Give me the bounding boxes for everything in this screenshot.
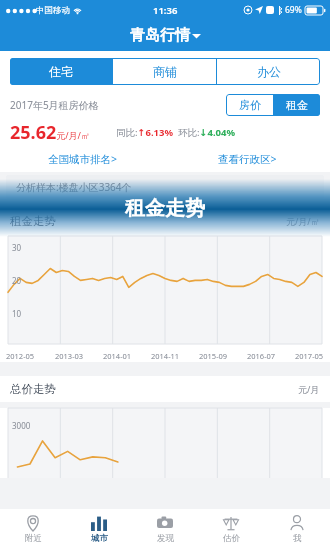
button[interactable]: 办公 — [217, 58, 320, 85]
button[interactable]: 商铺 — [113, 58, 216, 85]
staticText: 2012-05 — [6, 351, 35, 361]
staticText: 我 — [293, 533, 302, 544]
other: 发现 — [157, 515, 173, 531]
button[interactable]: 估价 — [198, 509, 264, 550]
staticText: 3000 — [12, 420, 31, 431]
button[interactable]: 我 — [264, 509, 330, 550]
staticText: 查看行政区> — [218, 152, 277, 166]
button[interactable]: 全国城市排名> — [0, 146, 165, 172]
staticText: 25.62元/月/㎡ — [10, 120, 90, 145]
other: 我 — [289, 515, 305, 531]
staticText: 2016-07 — [247, 351, 276, 361]
staticText: 青岛行情 — [130, 26, 190, 45]
staticText: 估价 — [223, 533, 240, 544]
staticText: 2015-09 — [199, 351, 228, 361]
staticText: 房价 — [239, 98, 261, 112]
staticText: 附近 — [25, 533, 42, 544]
other: 城市 — [91, 515, 107, 531]
staticText: 2013-03 — [55, 351, 84, 361]
staticText: 2014-11 — [151, 351, 180, 361]
staticText: 住宅 — [49, 64, 73, 79]
staticText: 租金走势 — [125, 196, 205, 221]
button[interactable]: 发现 — [132, 509, 198, 550]
other: 估价 — [223, 515, 239, 531]
staticText: 元/月 — [298, 383, 320, 395]
staticText: 20 — [12, 275, 22, 286]
staticText: 2014-01 — [103, 351, 132, 361]
staticText: 商铺 — [153, 64, 177, 79]
staticText: 办公 — [257, 64, 281, 79]
staticText: 2017年5月租房价格 — [10, 98, 99, 112]
button[interactable]: 租金 — [273, 94, 320, 116]
staticText: 租金 — [286, 98, 308, 112]
button[interactable]: 查看行政区> — [165, 146, 330, 172]
staticText: 同比:↑6.13% 环比:↓4.04% — [116, 126, 236, 139]
staticText: 分析样本:楼盘小区3364个 — [16, 180, 132, 194]
staticText: 11:36 — [153, 4, 178, 17]
button[interactable]: 住宅 — [10, 58, 112, 85]
button[interactable]: 青岛行情 — [0, 20, 330, 51]
staticText: 总价走势 — [10, 382, 56, 396]
other: 附近 — [25, 515, 41, 531]
staticText: 10 — [12, 308, 22, 319]
staticText: 中国移动 — [36, 5, 70, 16]
staticText: 租金走势 — [10, 214, 56, 228]
staticText: 30 — [12, 242, 22, 253]
staticText: 69% — [285, 4, 302, 16]
staticText: 元/月/㎡ — [286, 215, 320, 227]
button[interactable]: 附近 — [0, 509, 66, 550]
staticText: 全国城市排名> — [48, 152, 118, 166]
staticText: 城市 — [91, 533, 108, 544]
button[interactable]: 城市 — [66, 509, 132, 550]
button[interactable]: 房价 — [226, 94, 273, 116]
staticText: 2017-05 — [295, 351, 324, 361]
staticText: 发现 — [157, 533, 174, 544]
